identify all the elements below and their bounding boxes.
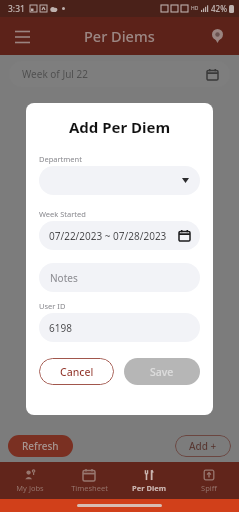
staticText: 6198 (49, 321, 72, 335)
staticText: My Jobs (16, 483, 44, 493)
staticText: Department (39, 154, 82, 164)
button[interactable]: Per Diem (119, 462, 179, 499)
staticText: Add + (189, 439, 217, 453)
staticText: Spiff (201, 483, 217, 493)
button[interactable]: Timesheet (59, 462, 119, 499)
staticText: Cancel (60, 365, 94, 379)
staticText: Per Diem (132, 483, 166, 493)
staticText: Week of Jul 22 (22, 67, 88, 81)
button[interactable]: Location (203, 22, 231, 50)
staticText: Week Started (39, 209, 86, 219)
button[interactable]: 07/22/2023 ~ 07/28/2023 (39, 221, 200, 250)
button[interactable]: Add + (175, 435, 231, 457)
button[interactable]: Refresh (8, 435, 73, 457)
button[interactable]: Spiff (179, 462, 239, 499)
staticText: 42% (211, 3, 227, 14)
staticText: Per Diems (84, 26, 155, 46)
staticText: 07/22/2023 ~ 07/28/2023 (49, 229, 167, 243)
button[interactable]: Week of Jul 22 (9, 61, 230, 87)
staticText: Timesheet (71, 483, 108, 493)
button[interactable] (39, 166, 200, 195)
button[interactable]: My Jobs (0, 462, 59, 499)
staticText: Add Per Diem (26, 117, 213, 137)
staticText: Save (150, 365, 174, 379)
staticText: 3:31 (8, 3, 25, 15)
button[interactable]: 6198 (39, 313, 200, 342)
button[interactable]: Notes (39, 263, 200, 292)
staticText: User ID (39, 301, 66, 311)
staticText: Refresh (22, 439, 59, 453)
staticText: HD (191, 5, 199, 12)
button[interactable]: Save (124, 358, 200, 385)
button[interactable]: Cancel (39, 358, 114, 385)
button[interactable]: Menu (8, 22, 36, 50)
staticText: Notes (50, 271, 78, 285)
